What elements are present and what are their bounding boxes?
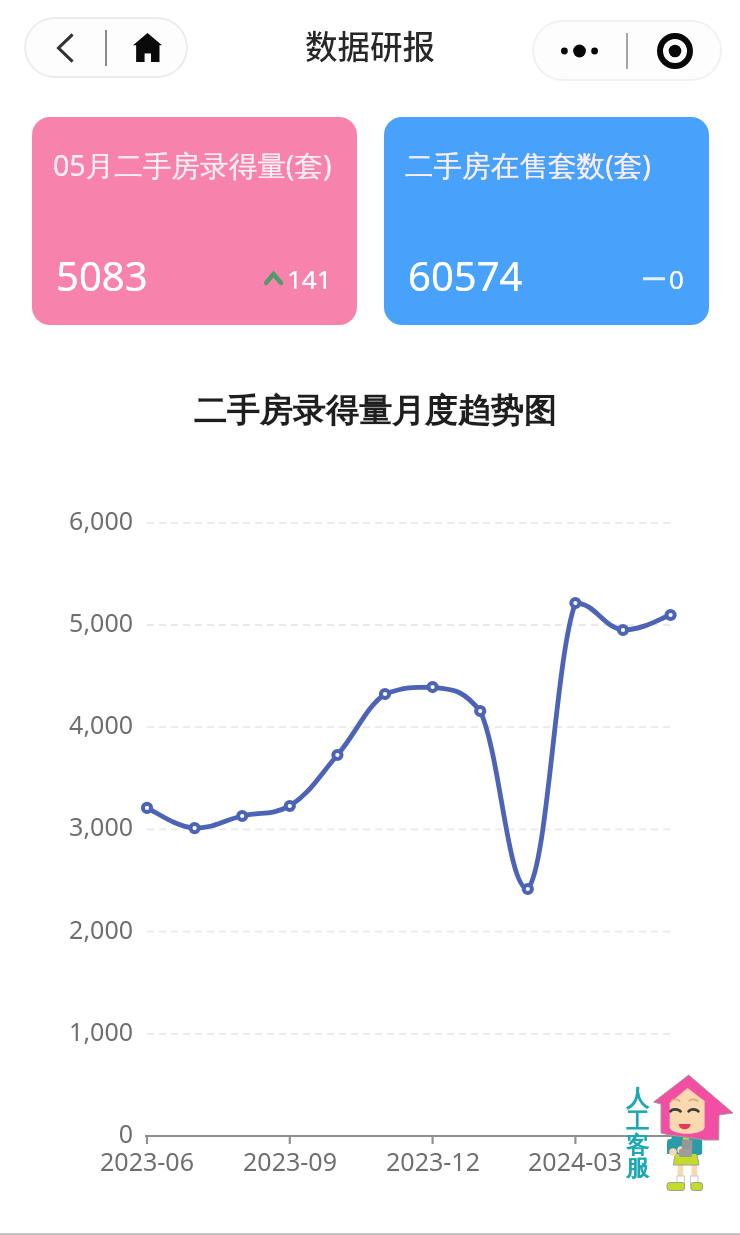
staticText: 6,000: [23, 503, 133, 537]
staticText: 工: [626, 1107, 649, 1136]
staticText: 0: [23, 1116, 133, 1150]
staticText: 2,000: [23, 912, 133, 946]
staticText: 5,000: [23, 605, 133, 639]
staticText: 2023-06: [67, 1144, 227, 1178]
button[interactable]: More options: [532, 20, 627, 81]
staticText: 二手房录得量月度趋势图: [5, 390, 740, 432]
button[interactable]: 二手房在售套数(套): [384, 117, 709, 325]
button[interactable]: Home: [106, 17, 188, 78]
staticText: 2023-09: [210, 1144, 370, 1178]
staticText: 0: [669, 261, 684, 296]
staticText: 3,000: [23, 809, 133, 843]
staticText: 服: [626, 1154, 649, 1183]
staticText: 二手房在售套数(套): [405, 145, 651, 184]
button[interactable]: Customer service: [626, 1084, 650, 1184]
staticText: 1,000: [23, 1014, 133, 1048]
staticText: 人: [626, 1084, 649, 1113]
staticText: 客: [626, 1131, 649, 1160]
staticText: 数据研报: [0, 21, 740, 68]
button[interactable]: Customer service assistant: [651, 1072, 735, 1194]
staticText: 5083: [56, 248, 148, 302]
staticText: 05月二手房录得量(套): [53, 145, 332, 184]
staticText: 60574: [408, 248, 523, 302]
staticText: 4,000: [23, 707, 133, 741]
button[interactable]: Back: [24, 17, 106, 78]
staticText: 2023-12: [353, 1144, 513, 1178]
button[interactable]: 05月二手房录得量(套): [32, 117, 357, 325]
staticText: 141: [287, 261, 332, 296]
button[interactable]: Close: [627, 20, 722, 81]
staticText: 2024-03: [495, 1144, 655, 1178]
